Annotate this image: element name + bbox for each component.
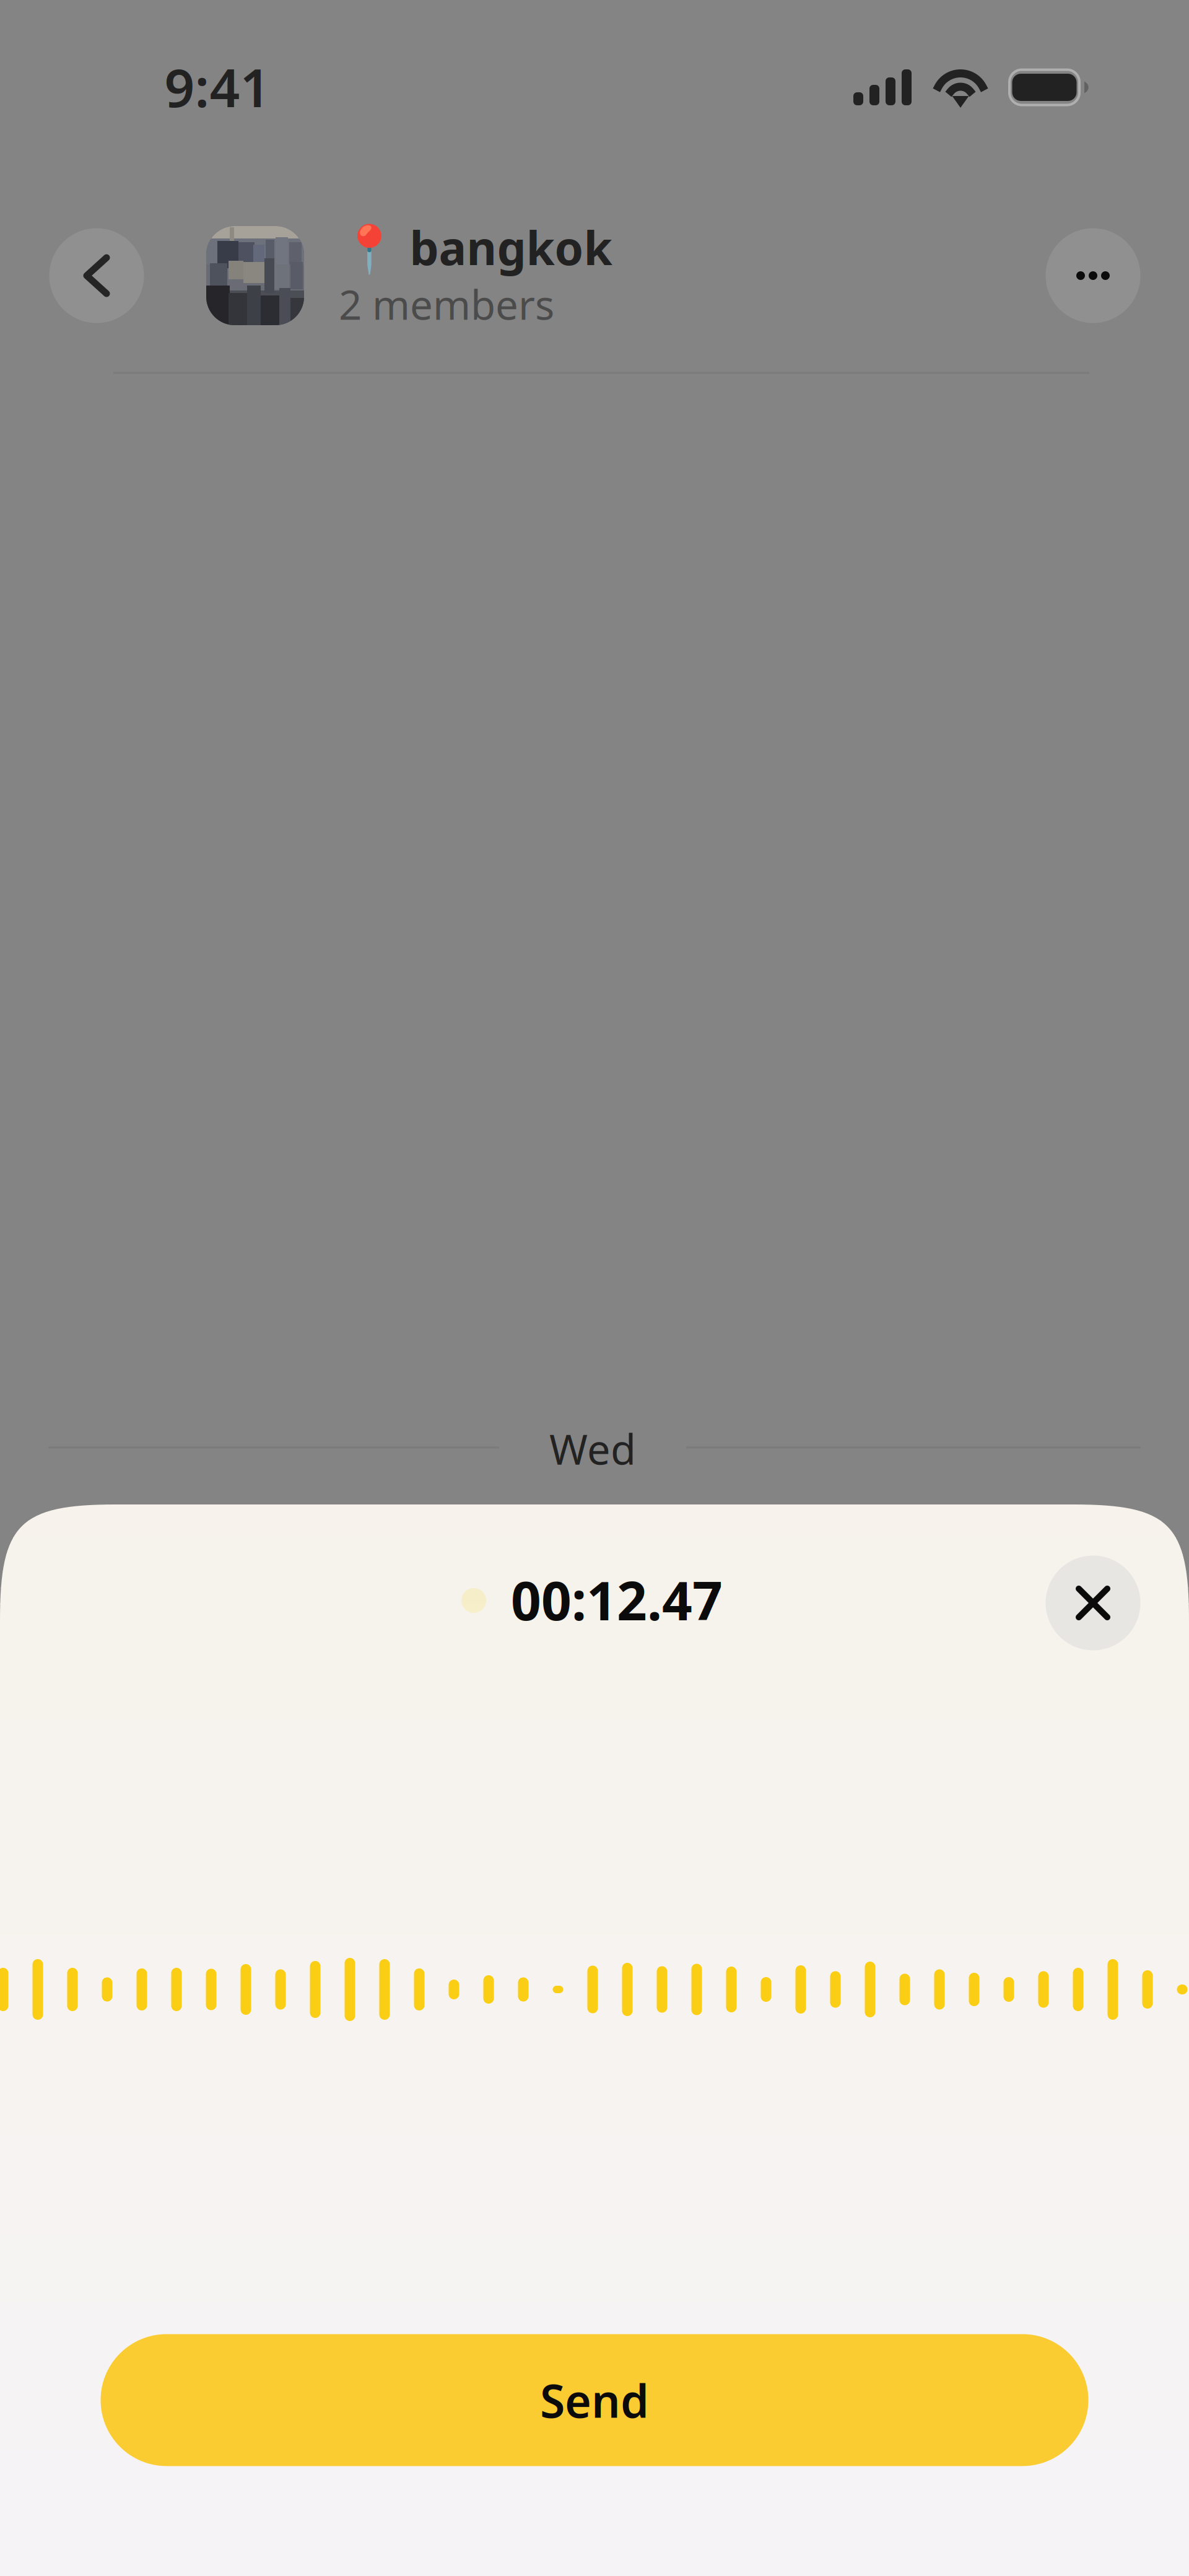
button[interactable]: More options [1046,228,1140,323]
button[interactable]: Cancel recording [1046,1556,1140,1650]
staticText: 00:12.47 [511,1565,723,1635]
staticText: 2 members [339,277,554,331]
staticText: 📍 bangkok [340,216,612,278]
button[interactable]: Back [49,228,144,323]
staticText: Wed [549,1421,636,1476]
staticText: Send [540,2370,649,2430]
staticText: 9:41 [164,52,270,122]
button[interactable]: Send [101,2334,1088,2466]
